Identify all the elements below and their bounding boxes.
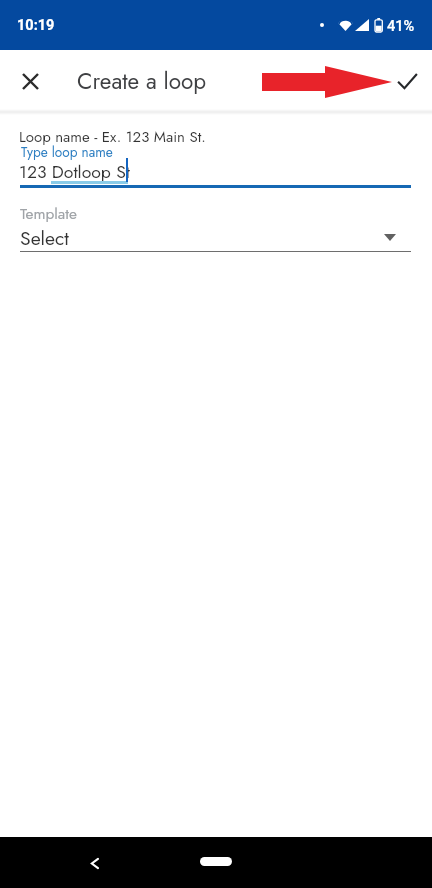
staticText: Template: [20, 203, 77, 225]
button[interactable]: Done: [385, 59, 429, 103]
button[interactable]: Select: [20, 222, 411, 254]
staticText: Loop name - Ex. 123 Main St.: [19, 126, 206, 148]
staticText: 123 Dotloop St: [19, 159, 131, 184]
button[interactable]: Home: [200, 857, 232, 866]
staticText: Type loop name: [21, 142, 113, 162]
button[interactable]: Close: [8, 59, 52, 103]
staticText: Select: [20, 224, 69, 252]
staticText: 41%: [387, 17, 415, 34]
staticText: 10:19: [17, 17, 55, 34]
button[interactable]: Back: [76, 845, 112, 881]
staticText: Create a loop: [77, 65, 207, 98]
